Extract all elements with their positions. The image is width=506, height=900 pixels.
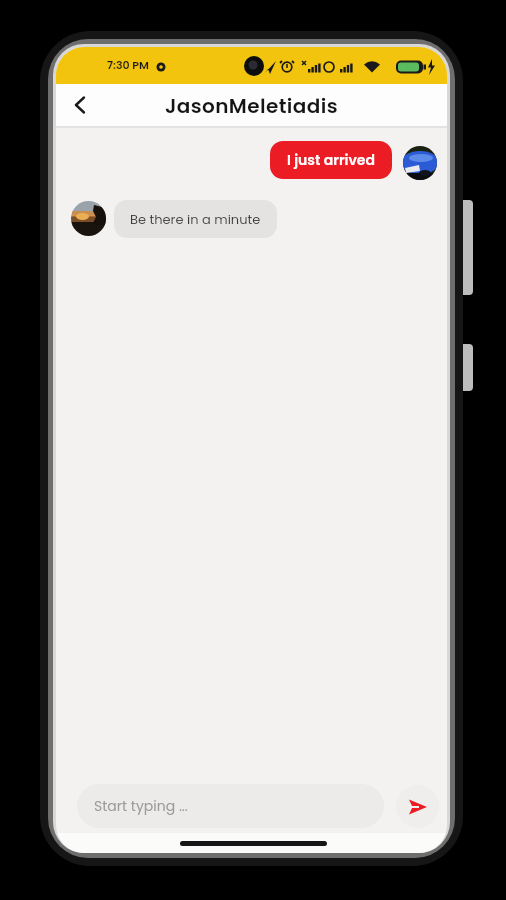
button[interactable]: [64, 88, 98, 122]
button[interactable]: [396, 785, 439, 828]
button[interactable]: Start typing ...: [77, 784, 384, 828]
staticText: Be there in a minute: [130, 210, 261, 228]
button[interactable]: I just arrived: [270, 141, 392, 179]
staticText: I just arrived: [287, 150, 375, 170]
staticText: Start typing ...: [94, 796, 188, 816]
button[interactable]: Be there in a minute: [114, 200, 277, 238]
staticText: JasonMeletiadis: [165, 92, 338, 120]
staticText: 7:30 PM: [107, 57, 149, 72]
